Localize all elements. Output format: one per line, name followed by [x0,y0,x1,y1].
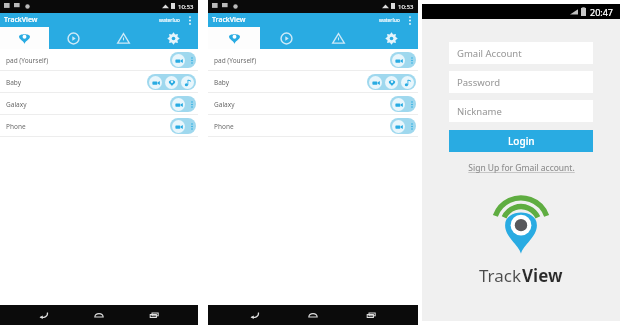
button[interactable]: Location [385,76,398,89]
button[interactable]: Home [88,305,110,325]
button[interactable]: Video [392,54,405,67]
button[interactable]: Home [302,305,324,325]
button[interactable]: Video [172,120,185,133]
button[interactable]: Video [149,76,162,89]
staticText: 10:53 [178,3,194,11]
button[interactable] [260,27,312,49]
staticText: Phone [6,122,26,131]
button[interactable]: Recent apps [360,305,382,325]
button[interactable]: Baby [0,71,198,93]
staticText: TrackView [212,15,246,25]
button[interactable]: Baby [208,71,418,93]
staticText: Galaxy [214,100,235,109]
staticText: Baby [214,78,230,87]
staticText: View [522,264,563,287]
button[interactable]: Nickname [449,100,593,122]
staticText: Phone [214,122,234,131]
button[interactable]: Video [172,98,185,111]
button[interactable]: More options [186,14,194,26]
staticText: 10:53 [398,3,414,11]
button[interactable]: Back [33,305,55,325]
button[interactable]: Video [392,98,405,111]
button[interactable]: Back [244,305,266,325]
button[interactable]: Phone [208,115,418,137]
button[interactable]: Login [449,130,593,152]
button[interactable] [312,27,365,49]
button[interactable]: Recent apps [143,305,165,325]
staticText: Track [479,264,522,287]
button[interactable]: pad (Yourself) [208,49,418,71]
button[interactable]: Gmail Account [449,42,593,64]
staticText: TrackView [4,15,38,25]
button[interactable]: pad (Yourself) [0,49,198,71]
button[interactable] [208,27,260,49]
button[interactable]: Video [172,54,185,67]
staticText: Password [457,76,500,89]
staticText: pad (Yourself) [214,56,257,65]
staticText: waterluo [379,17,400,24]
staticText: Baby [6,78,22,87]
button[interactable]: Galaxy [0,93,198,115]
staticText: waterluo [159,17,180,24]
staticText: Sign Up for Gmail account. [468,162,575,174]
button[interactable]: Galaxy [208,93,418,115]
button[interactable]: Video [369,76,382,89]
staticText: Login [508,134,535,148]
button[interactable]: Audio [401,76,414,89]
button[interactable] [49,27,98,49]
button[interactable]: More options [406,14,414,26]
staticText: Galaxy [6,100,27,109]
staticText: Gmail Account [457,47,522,60]
button[interactable] [365,27,418,49]
staticText: 20:47 [590,6,614,18]
button[interactable] [98,27,148,49]
button[interactable]: Location [165,76,178,89]
button[interactable] [148,27,198,49]
button[interactable]: Password [449,71,593,93]
button[interactable]: Phone [0,115,198,137]
button[interactable] [0,27,49,49]
button[interactable]: Video [392,120,405,133]
staticText: pad (Yourself) [6,56,49,65]
staticText: Nickname [457,105,502,118]
button[interactable]: Sign Up for Gmail account. [468,162,575,174]
button[interactable]: Audio [181,76,194,89]
